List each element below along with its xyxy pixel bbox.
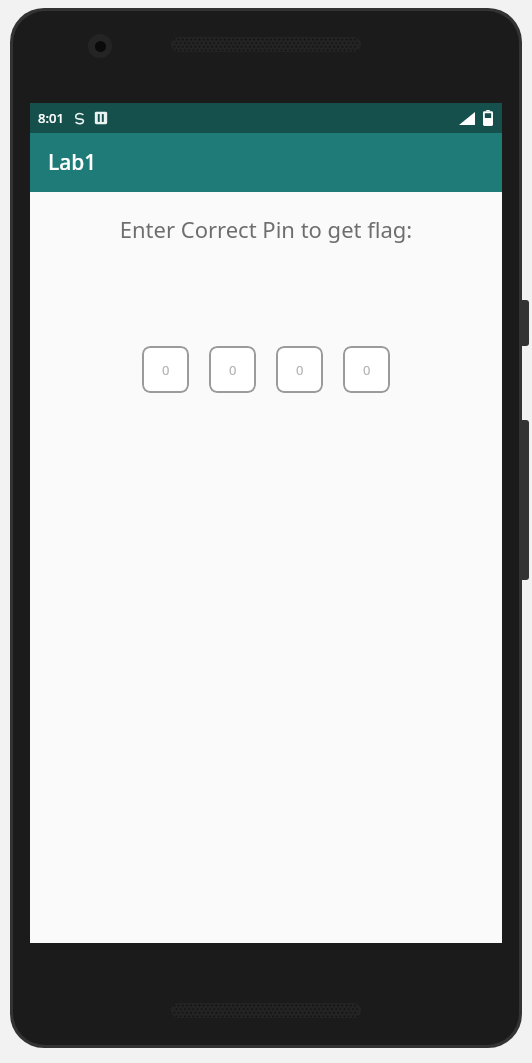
staticText: 0 [296, 361, 304, 379]
staticText: Enter Correct Pin to get flag: [30, 214, 502, 244]
staticText: 0 [363, 361, 371, 379]
button[interactable]: 0 [142, 346, 189, 393]
button[interactable]: 0 [209, 346, 256, 393]
button[interactable]: 0 [276, 346, 323, 393]
staticText: 8:01 [38, 109, 64, 127]
button[interactable]: 0 [343, 346, 390, 393]
staticText: 0 [162, 361, 170, 379]
staticText: Lab1 [48, 148, 97, 177]
staticText: 0 [229, 361, 237, 379]
